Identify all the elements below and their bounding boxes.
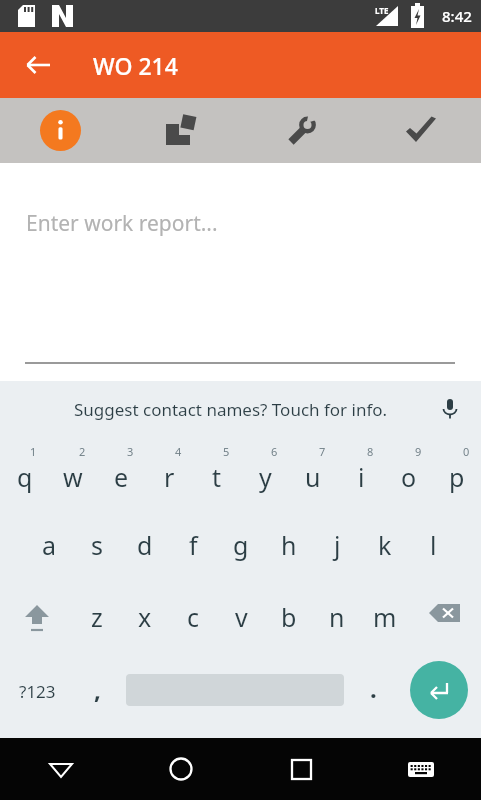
button[interactable]: i bbox=[337, 437, 385, 509]
button[interactable]: z bbox=[73, 581, 121, 653]
staticText: c bbox=[187, 600, 200, 634]
staticText: o bbox=[401, 460, 417, 494]
button[interactable]: u bbox=[289, 437, 337, 509]
button[interactable]: Recent apps bbox=[241, 738, 361, 800]
staticText: 7 bbox=[319, 444, 326, 459]
staticText: 0 bbox=[463, 444, 470, 459]
staticText: Suggest contact names? Touch for info. bbox=[74, 398, 388, 421]
staticText: w bbox=[63, 460, 83, 494]
staticText: s bbox=[91, 528, 103, 562]
button[interactable]: c bbox=[169, 581, 217, 653]
staticText: m bbox=[373, 600, 397, 634]
button[interactable]: l bbox=[409, 509, 457, 581]
staticText: . bbox=[370, 672, 377, 705]
button[interactable]: n bbox=[313, 581, 361, 653]
button[interactable]: f bbox=[169, 509, 217, 581]
button[interactable]: w bbox=[49, 437, 97, 509]
staticText: 2 bbox=[79, 444, 86, 459]
staticText: u bbox=[305, 460, 321, 494]
button[interactable]: k bbox=[361, 509, 409, 581]
button[interactable]: e bbox=[97, 437, 145, 509]
button[interactable]: x bbox=[121, 581, 169, 653]
button[interactable]: Info bbox=[0, 98, 121, 163]
button[interactable]: m bbox=[361, 581, 409, 653]
staticText: ?123 bbox=[19, 680, 56, 703]
staticText: j bbox=[334, 528, 341, 562]
button[interactable]: Shift bbox=[0, 581, 73, 653]
button[interactable]: d bbox=[121, 509, 169, 581]
staticText: , bbox=[94, 673, 101, 706]
button[interactable]: Suggest contact names? Touch for info. bbox=[0, 381, 481, 437]
staticText: 4 bbox=[175, 444, 182, 459]
button[interactable]: b bbox=[265, 581, 313, 653]
staticText: 8:42 bbox=[442, 6, 472, 26]
staticText: x bbox=[138, 600, 152, 634]
button[interactable]: Voice input bbox=[432, 391, 468, 427]
staticText: k bbox=[378, 528, 392, 562]
button[interactable]: Home bbox=[121, 738, 241, 800]
button[interactable]: Complete bbox=[361, 98, 481, 163]
button[interactable]: y bbox=[241, 437, 289, 509]
staticText: z bbox=[91, 600, 103, 634]
staticText: 9 bbox=[415, 444, 422, 459]
button[interactable]: g bbox=[217, 509, 265, 581]
staticText: LTE bbox=[375, 5, 389, 16]
staticText: Enter work report... bbox=[26, 209, 218, 238]
staticText: WO 214 bbox=[93, 50, 178, 81]
staticText: e bbox=[114, 460, 129, 494]
staticText: g bbox=[233, 528, 249, 562]
staticText: 8 bbox=[367, 444, 374, 459]
button[interactable]: s bbox=[73, 509, 121, 581]
staticText: v bbox=[235, 600, 248, 634]
button[interactable]: Back bbox=[0, 738, 121, 800]
staticText: r bbox=[164, 460, 175, 494]
button[interactable]: Enter bbox=[396, 653, 481, 738]
staticText: p bbox=[449, 460, 465, 494]
staticText: i bbox=[358, 460, 365, 494]
button[interactable]: a bbox=[25, 509, 73, 581]
staticText: y bbox=[259, 460, 272, 494]
button[interactable]: p bbox=[433, 437, 481, 509]
button[interactable]: h bbox=[265, 509, 313, 581]
staticText: b bbox=[281, 600, 297, 634]
button[interactable]: q bbox=[0, 437, 49, 509]
staticText: l bbox=[430, 528, 437, 562]
button[interactable]: Back bbox=[14, 41, 62, 89]
button[interactable]: ?123 bbox=[0, 653, 75, 738]
staticText: t bbox=[212, 460, 222, 494]
button[interactable]: , bbox=[75, 653, 119, 738]
button[interactable]: Tools bbox=[241, 98, 361, 163]
button[interactable]: r bbox=[145, 437, 193, 509]
staticText: d bbox=[137, 528, 153, 562]
button[interactable]: Keyboard bbox=[361, 738, 481, 800]
staticText: q bbox=[17, 460, 33, 494]
staticText: 1 bbox=[30, 444, 37, 459]
staticText: 3 bbox=[127, 444, 134, 459]
button[interactable]: o bbox=[385, 437, 433, 509]
button[interactable]: . bbox=[351, 653, 396, 738]
button[interactable]: Assets bbox=[121, 98, 241, 163]
staticText: a bbox=[42, 528, 57, 562]
button[interactable]: t bbox=[193, 437, 241, 509]
button[interactable]: Space bbox=[119, 653, 351, 738]
staticText: 6 bbox=[271, 444, 278, 459]
button[interactable]: v bbox=[217, 581, 265, 653]
staticText: 5 bbox=[223, 444, 230, 459]
button[interactable]: j bbox=[313, 509, 361, 581]
staticText: f bbox=[189, 528, 198, 562]
staticText: n bbox=[329, 600, 345, 634]
button[interactable]: Backspace bbox=[409, 581, 481, 653]
staticText: h bbox=[281, 528, 297, 562]
